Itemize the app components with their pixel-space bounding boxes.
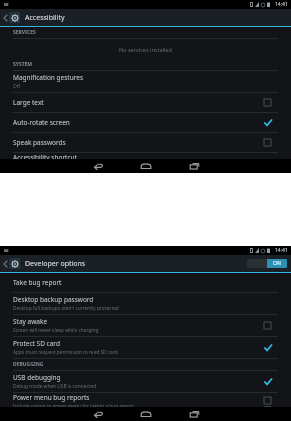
- button[interactable]: Speak passwords: [13, 133, 278, 153]
- staticText: No services installed: [119, 46, 172, 53]
- staticText: USB debugging: [13, 373, 61, 382]
- button[interactable]: Home: [131, 159, 161, 173]
- button[interactable]: Checked: [263, 377, 272, 386]
- button[interactable]: Accessibility shortcut: [13, 153, 278, 159]
- staticText: Stay awake: [13, 317, 48, 326]
- button[interactable]: Navigate up: [2, 9, 9, 26]
- button[interactable]: Take bug report: [13, 273, 278, 293]
- button[interactable]: Magnification gestures: [13, 71, 278, 93]
- staticText: Auto-rotate screen: [13, 118, 70, 127]
- button[interactable]: Unchecked: [263, 98, 272, 107]
- button[interactable]: Unchecked: [263, 396, 272, 405]
- button[interactable]: ON: [247, 259, 287, 268]
- staticText: Accessibility shortcut: [13, 153, 77, 159]
- button[interactable]: Recent apps: [179, 159, 209, 173]
- button[interactable]: Navigate up: [2, 255, 9, 272]
- staticText: DEBUGGING: [13, 361, 44, 368]
- staticText: Include option in power menu for taking …: [13, 403, 134, 407]
- staticText: Protect SD card: [13, 339, 60, 348]
- button[interactable]: Power menu bug reports: [13, 393, 278, 407]
- button[interactable]: USB debugging: [13, 371, 278, 393]
- button[interactable]: Unchecked: [263, 138, 272, 147]
- button[interactable]: Desktop backup password: [13, 293, 278, 315]
- button[interactable]: Auto-rotate screen: [13, 113, 278, 133]
- button[interactable]: Stay awake: [13, 315, 278, 337]
- staticText: Accessibility: [25, 13, 65, 23]
- staticText: Speak passwords: [13, 138, 66, 147]
- staticText: Power menu bug reports: [13, 393, 90, 402]
- staticText: Screen will never sleep while charging: [13, 327, 99, 334]
- staticText: Take bug report: [13, 278, 62, 287]
- button[interactable]: Unchecked: [263, 321, 272, 330]
- button[interactable]: Back: [83, 159, 113, 173]
- staticText: Developer options: [25, 259, 86, 269]
- staticText: Desktop full backups aren't currently pr…: [13, 305, 119, 312]
- staticText: ON: [273, 260, 281, 267]
- button[interactable]: Recent apps: [179, 407, 209, 421]
- staticText: Large text: [13, 98, 44, 107]
- button[interactable]: Back: [83, 407, 113, 421]
- staticText: Apps must request permission to read SD …: [13, 349, 118, 356]
- staticText: Debug mode when USB is connected: [13, 383, 97, 390]
- staticText: SYSTEM: [13, 61, 33, 68]
- staticText: Magnification gestures: [13, 73, 84, 82]
- button[interactable]: Checked: [263, 118, 272, 127]
- staticText: SERVICES: [13, 29, 36, 36]
- button[interactable]: Protect SD card: [13, 337, 278, 359]
- staticText: 14:41: [275, 1, 288, 8]
- button[interactable]: Checked: [263, 343, 272, 352]
- button[interactable]: Home: [131, 407, 161, 421]
- staticText: Off: [13, 83, 21, 90]
- staticText: Desktop backup password: [13, 295, 94, 304]
- staticText: 14:41: [275, 247, 288, 254]
- button[interactable]: Large text: [13, 93, 278, 113]
